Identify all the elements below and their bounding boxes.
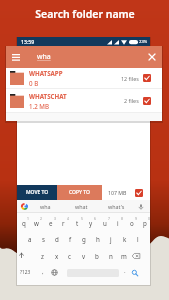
button[interactable]: Shift: [18, 252, 25, 259]
staticText: what: [75, 203, 88, 210]
staticText: 5: [81, 216, 83, 221]
staticText: o: [130, 219, 134, 227]
button[interactable]: Selected: [135, 189, 143, 197]
staticText: p: [143, 219, 147, 227]
button[interactable]: z: [37, 247, 48, 264]
staticText: i: [117, 219, 119, 227]
staticText: r: [62, 219, 65, 227]
staticText: j: [110, 235, 112, 243]
staticText: 7: [108, 216, 110, 221]
button[interactable]: Search: [131, 269, 139, 277]
button[interactable]: k: [119, 230, 130, 247]
staticText: 13:59: [21, 38, 35, 45]
staticText: WHATSCHAT: [29, 92, 67, 100]
button[interactable]: WHATSAPP: [6, 68, 162, 88]
staticText: 6: [94, 216, 96, 221]
button[interactable]: Selected: [143, 74, 151, 82]
staticText: 1: [27, 216, 29, 221]
staticText: 1.2 MB: [29, 102, 49, 110]
staticText: f: [69, 235, 72, 243]
staticText: .: [124, 267, 126, 275]
staticText: Search folder name: [35, 7, 135, 21]
staticText: 3: [54, 216, 56, 221]
staticText: m: [121, 252, 127, 260]
button[interactable]: u: [99, 213, 110, 230]
button[interactable]: c: [64, 247, 75, 264]
staticText: v: [82, 252, 86, 260]
staticText: z: [41, 252, 44, 260]
button[interactable]: MOVE TO: [17, 185, 57, 200]
staticText: c: [68, 252, 71, 260]
button[interactable]: d: [51, 230, 62, 247]
button[interactable]: w: [31, 213, 42, 230]
staticText: x: [55, 252, 59, 260]
staticText: WHATSAPP: [29, 69, 63, 77]
button[interactable]: r: [58, 213, 69, 230]
button[interactable]: q: [18, 213, 29, 230]
staticText: w: [34, 219, 39, 227]
button[interactable]: Menu: [12, 54, 20, 60]
staticText: k: [123, 235, 127, 243]
staticText: 23%: [139, 39, 148, 45]
button[interactable]: e: [45, 213, 56, 230]
staticText: s: [42, 235, 45, 243]
staticText: ?123: [20, 269, 31, 276]
staticText: e: [49, 219, 53, 227]
staticText: t: [76, 219, 79, 227]
button[interactable]: COPY TO: [57, 185, 102, 200]
button[interactable]: m: [118, 247, 129, 264]
button[interactable]: h: [92, 230, 103, 247]
staticText: y: [89, 219, 93, 227]
button[interactable]: t: [72, 213, 83, 230]
button[interactable]: b: [91, 247, 102, 264]
staticText: 107 MB: [108, 189, 127, 196]
staticText: g: [82, 235, 86, 243]
staticText: d: [55, 235, 59, 243]
button[interactable]: Voice input: [138, 204, 144, 210]
button[interactable]: i: [112, 213, 123, 230]
button[interactable]: f: [65, 230, 76, 247]
staticText: 2 files: [124, 97, 139, 104]
staticText: a: [28, 235, 32, 243]
button[interactable]: n: [105, 247, 116, 264]
button[interactable]: WHATSCHAT: [6, 89, 162, 112]
staticText: u: [103, 219, 107, 227]
button[interactable]: j: [105, 230, 116, 247]
button[interactable]: Change language: [51, 269, 58, 276]
button[interactable]: o: [126, 213, 137, 230]
staticText: ,: [42, 268, 44, 276]
staticText: 12 files: [121, 75, 139, 82]
staticText: 0 B: [29, 79, 39, 87]
staticText: wha: [37, 52, 51, 62]
staticText: 8: [121, 216, 123, 221]
staticText: b: [95, 252, 99, 260]
button[interactable]: y: [85, 213, 96, 230]
staticText: n: [109, 252, 113, 260]
staticText: MOVE TO: [26, 189, 49, 196]
button[interactable]: Clear search: [149, 54, 155, 60]
staticText: h: [96, 235, 100, 243]
staticText: what's: [108, 203, 125, 210]
staticText: 0: [148, 216, 150, 221]
button[interactable]: Backspace: [132, 253, 140, 259]
staticText: wha: [40, 203, 51, 210]
button[interactable]: v: [78, 247, 89, 264]
button[interactable]: Selected: [143, 97, 151, 105]
staticText: 2: [40, 216, 42, 221]
button[interactable]: s: [38, 230, 49, 247]
staticText: q: [22, 219, 26, 227]
button[interactable]: l: [132, 230, 143, 247]
button[interactable]: a: [24, 230, 35, 247]
staticText: 4: [67, 216, 69, 221]
button[interactable]: p: [139, 213, 150, 230]
staticText: 9: [135, 216, 137, 221]
staticText: l: [137, 235, 139, 243]
button[interactable]: g: [78, 230, 89, 247]
button[interactable]: x: [51, 247, 62, 264]
staticText: COPY TO: [69, 189, 90, 196]
